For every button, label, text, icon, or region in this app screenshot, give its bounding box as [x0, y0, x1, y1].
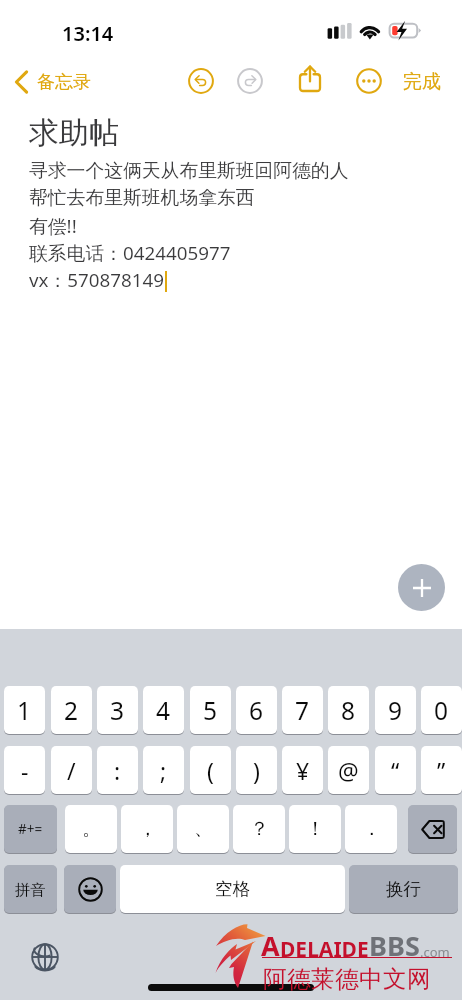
button[interactable]: ” [421, 746, 462, 794]
button[interactable]: 9 [375, 686, 416, 734]
staticText: 换行 [386, 878, 421, 900]
staticText: 备忘录 [37, 71, 91, 94]
staticText: - [21, 755, 29, 786]
button[interactable]: / [51, 746, 92, 794]
staticText: 7 [295, 694, 310, 727]
button[interactable]: More options [352, 64, 386, 98]
button[interactable]: “ [375, 746, 416, 794]
staticText: 6 [249, 694, 264, 727]
staticText: 帮忙去布里斯班机场拿东西 [29, 186, 255, 210]
staticText: BBS [369, 927, 420, 964]
staticText: “ [391, 755, 400, 786]
button[interactable]: #+= [4, 805, 57, 853]
staticText: 1 [17, 694, 32, 727]
staticText: ) [253, 755, 260, 786]
button[interactable]: : [97, 746, 138, 794]
staticText: 空格 [215, 878, 250, 900]
staticText: vx：570878149 [29, 267, 165, 293]
staticText: 4 [156, 694, 171, 727]
button[interactable]: 6 [236, 686, 277, 734]
staticText: 13:14 [62, 20, 114, 47]
button[interactable]: ) [236, 746, 277, 794]
staticText: 寻求一个这俩天从布里斯班回阿德的人 [29, 159, 349, 183]
button[interactable]: ( [190, 746, 231, 794]
staticText: ． [362, 817, 381, 841]
staticText: ！ [306, 817, 325, 841]
button[interactable]: ¥ [282, 746, 323, 794]
staticText: ， [138, 817, 157, 841]
button[interactable]: 4 [143, 686, 184, 734]
button[interactable]: Redo [233, 64, 267, 98]
staticText: ？ [250, 817, 269, 841]
button[interactable]: ！ [289, 805, 341, 853]
button[interactable]: 5 [190, 686, 231, 734]
button[interactable]: 、 [177, 805, 229, 853]
staticText: 、 [194, 817, 213, 841]
staticText: 3 [110, 694, 125, 727]
button[interactable]: 1 [4, 686, 45, 734]
button[interactable]: ， [121, 805, 173, 853]
staticText: @ [338, 755, 359, 786]
button[interactable]: Emoji [64, 865, 116, 913]
button[interactable]: - [4, 746, 45, 794]
staticText: 9 [388, 694, 403, 727]
staticText: 完成 [403, 70, 441, 94]
staticText: ; [160, 755, 167, 786]
staticText: 0 [434, 694, 449, 727]
staticText: #+= [18, 820, 43, 838]
staticText: 阿德莱德中文网 [263, 964, 431, 994]
button[interactable]: 。 [65, 805, 117, 853]
button[interactable]: Backspace [408, 805, 457, 853]
button[interactable]: 备忘录 [8, 55, 97, 108]
button[interactable]: @ [328, 746, 369, 794]
button[interactable]: Add [398, 564, 445, 611]
button[interactable]: 3 [97, 686, 138, 734]
button[interactable]: ？ [233, 805, 285, 853]
button[interactable]: 8 [328, 686, 369, 734]
button[interactable]: 2 [51, 686, 92, 734]
button[interactable]: 空格 [120, 865, 345, 913]
staticText: / [67, 755, 76, 786]
staticText: A [261, 927, 280, 964]
staticText: 联系电话：0424405977 [29, 240, 231, 266]
button[interactable]: 完成 [396, 55, 448, 108]
staticText: 有偿!! [29, 213, 77, 239]
staticText: DELAIDE [280, 935, 369, 964]
staticText: 2 [64, 694, 79, 727]
staticText: 求助帖 [29, 114, 119, 152]
staticText: ¥ [296, 755, 310, 786]
button[interactable]: ; [143, 746, 184, 794]
button[interactable]: ． [345, 805, 397, 853]
button[interactable]: 换行 [349, 865, 458, 913]
button[interactable]: 拼音 [4, 865, 57, 913]
button[interactable]: 7 [282, 686, 323, 734]
staticText: 5 [203, 694, 218, 727]
button[interactable]: Switch keyboard [22, 934, 68, 980]
button[interactable]: 0 [421, 686, 462, 734]
staticText: 。 [82, 817, 101, 841]
staticText: ” [437, 755, 446, 786]
button[interactable]: Undo [184, 64, 218, 98]
staticText: .com [420, 943, 450, 961]
staticText: ( [207, 755, 214, 786]
staticText: 8 [341, 694, 356, 727]
staticText: : [114, 755, 121, 786]
staticText: 拼音 [15, 880, 46, 899]
button[interactable]: Share [293, 61, 327, 95]
